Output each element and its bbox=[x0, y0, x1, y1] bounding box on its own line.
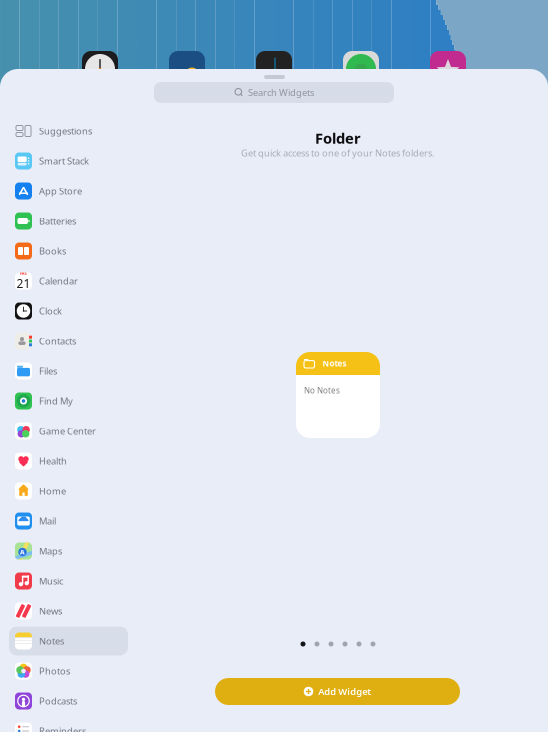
button[interactable]: Mail bbox=[0, 506, 128, 536]
staticText: Suggestions bbox=[39, 125, 92, 137]
button[interactable]: Photos bbox=[0, 656, 128, 686]
button[interactable]: Podcasts bbox=[0, 686, 128, 716]
button[interactable]: Health bbox=[0, 446, 128, 476]
button[interactable]: Contacts bbox=[0, 326, 128, 356]
staticText: Home bbox=[39, 485, 66, 497]
button[interactable]: Game Center bbox=[0, 416, 128, 446]
button[interactable]: A bbox=[0, 536, 128, 566]
button[interactable]: Suggestions bbox=[0, 116, 128, 146]
staticText: Reminders bbox=[39, 725, 86, 732]
staticText: FRI bbox=[20, 271, 27, 276]
staticText: Get quick access to one of your Notes fo… bbox=[241, 147, 435, 159]
staticText: Contacts bbox=[39, 335, 76, 347]
staticText: 21 bbox=[16, 275, 30, 291]
staticText: Find My bbox=[39, 395, 73, 407]
staticText: Books bbox=[39, 245, 66, 257]
staticText: A bbox=[20, 548, 25, 556]
staticText: Search Widgets bbox=[248, 86, 314, 99]
button[interactable]: News bbox=[0, 596, 128, 626]
staticText: App Store bbox=[39, 185, 82, 197]
staticText: Game Center bbox=[39, 425, 96, 437]
staticText: Mail bbox=[39, 515, 56, 527]
staticText: Health bbox=[39, 455, 67, 467]
button[interactable]: Reminders bbox=[0, 716, 128, 732]
staticText: Clock bbox=[39, 305, 62, 317]
staticText: Notes bbox=[322, 358, 346, 369]
button[interactable]: FRI bbox=[0, 266, 128, 296]
staticText: News bbox=[39, 605, 62, 617]
staticText: Photos bbox=[39, 665, 70, 677]
button[interactable]: Find My bbox=[0, 386, 128, 416]
staticText: No Notes bbox=[304, 385, 340, 396]
button[interactable]: App Store bbox=[0, 176, 128, 206]
button[interactable]: Search Widgets bbox=[154, 82, 394, 103]
button[interactable]: Notes bbox=[0, 626, 128, 656]
button[interactable]: Home bbox=[0, 476, 128, 506]
staticText: Music bbox=[39, 575, 63, 587]
button[interactable]: Files bbox=[0, 356, 128, 386]
staticText: Add Widget bbox=[318, 685, 371, 698]
button[interactable]: Add Widget bbox=[215, 678, 460, 705]
button[interactable]: Smart Stack bbox=[0, 146, 128, 176]
staticText: Files bbox=[39, 365, 57, 377]
button[interactable]: Books bbox=[0, 236, 128, 266]
button[interactable]: Batteries bbox=[0, 206, 128, 236]
button[interactable]: Music bbox=[0, 566, 128, 596]
staticText: Maps bbox=[39, 545, 62, 557]
staticText: Podcasts bbox=[39, 695, 77, 707]
staticText: Folder bbox=[315, 128, 361, 148]
staticText: Batteries bbox=[39, 215, 76, 227]
button[interactable]: Clock bbox=[0, 296, 128, 326]
staticText: Notes bbox=[39, 635, 64, 647]
staticText: Smart Stack bbox=[39, 155, 89, 167]
staticText: Calendar bbox=[39, 275, 78, 287]
